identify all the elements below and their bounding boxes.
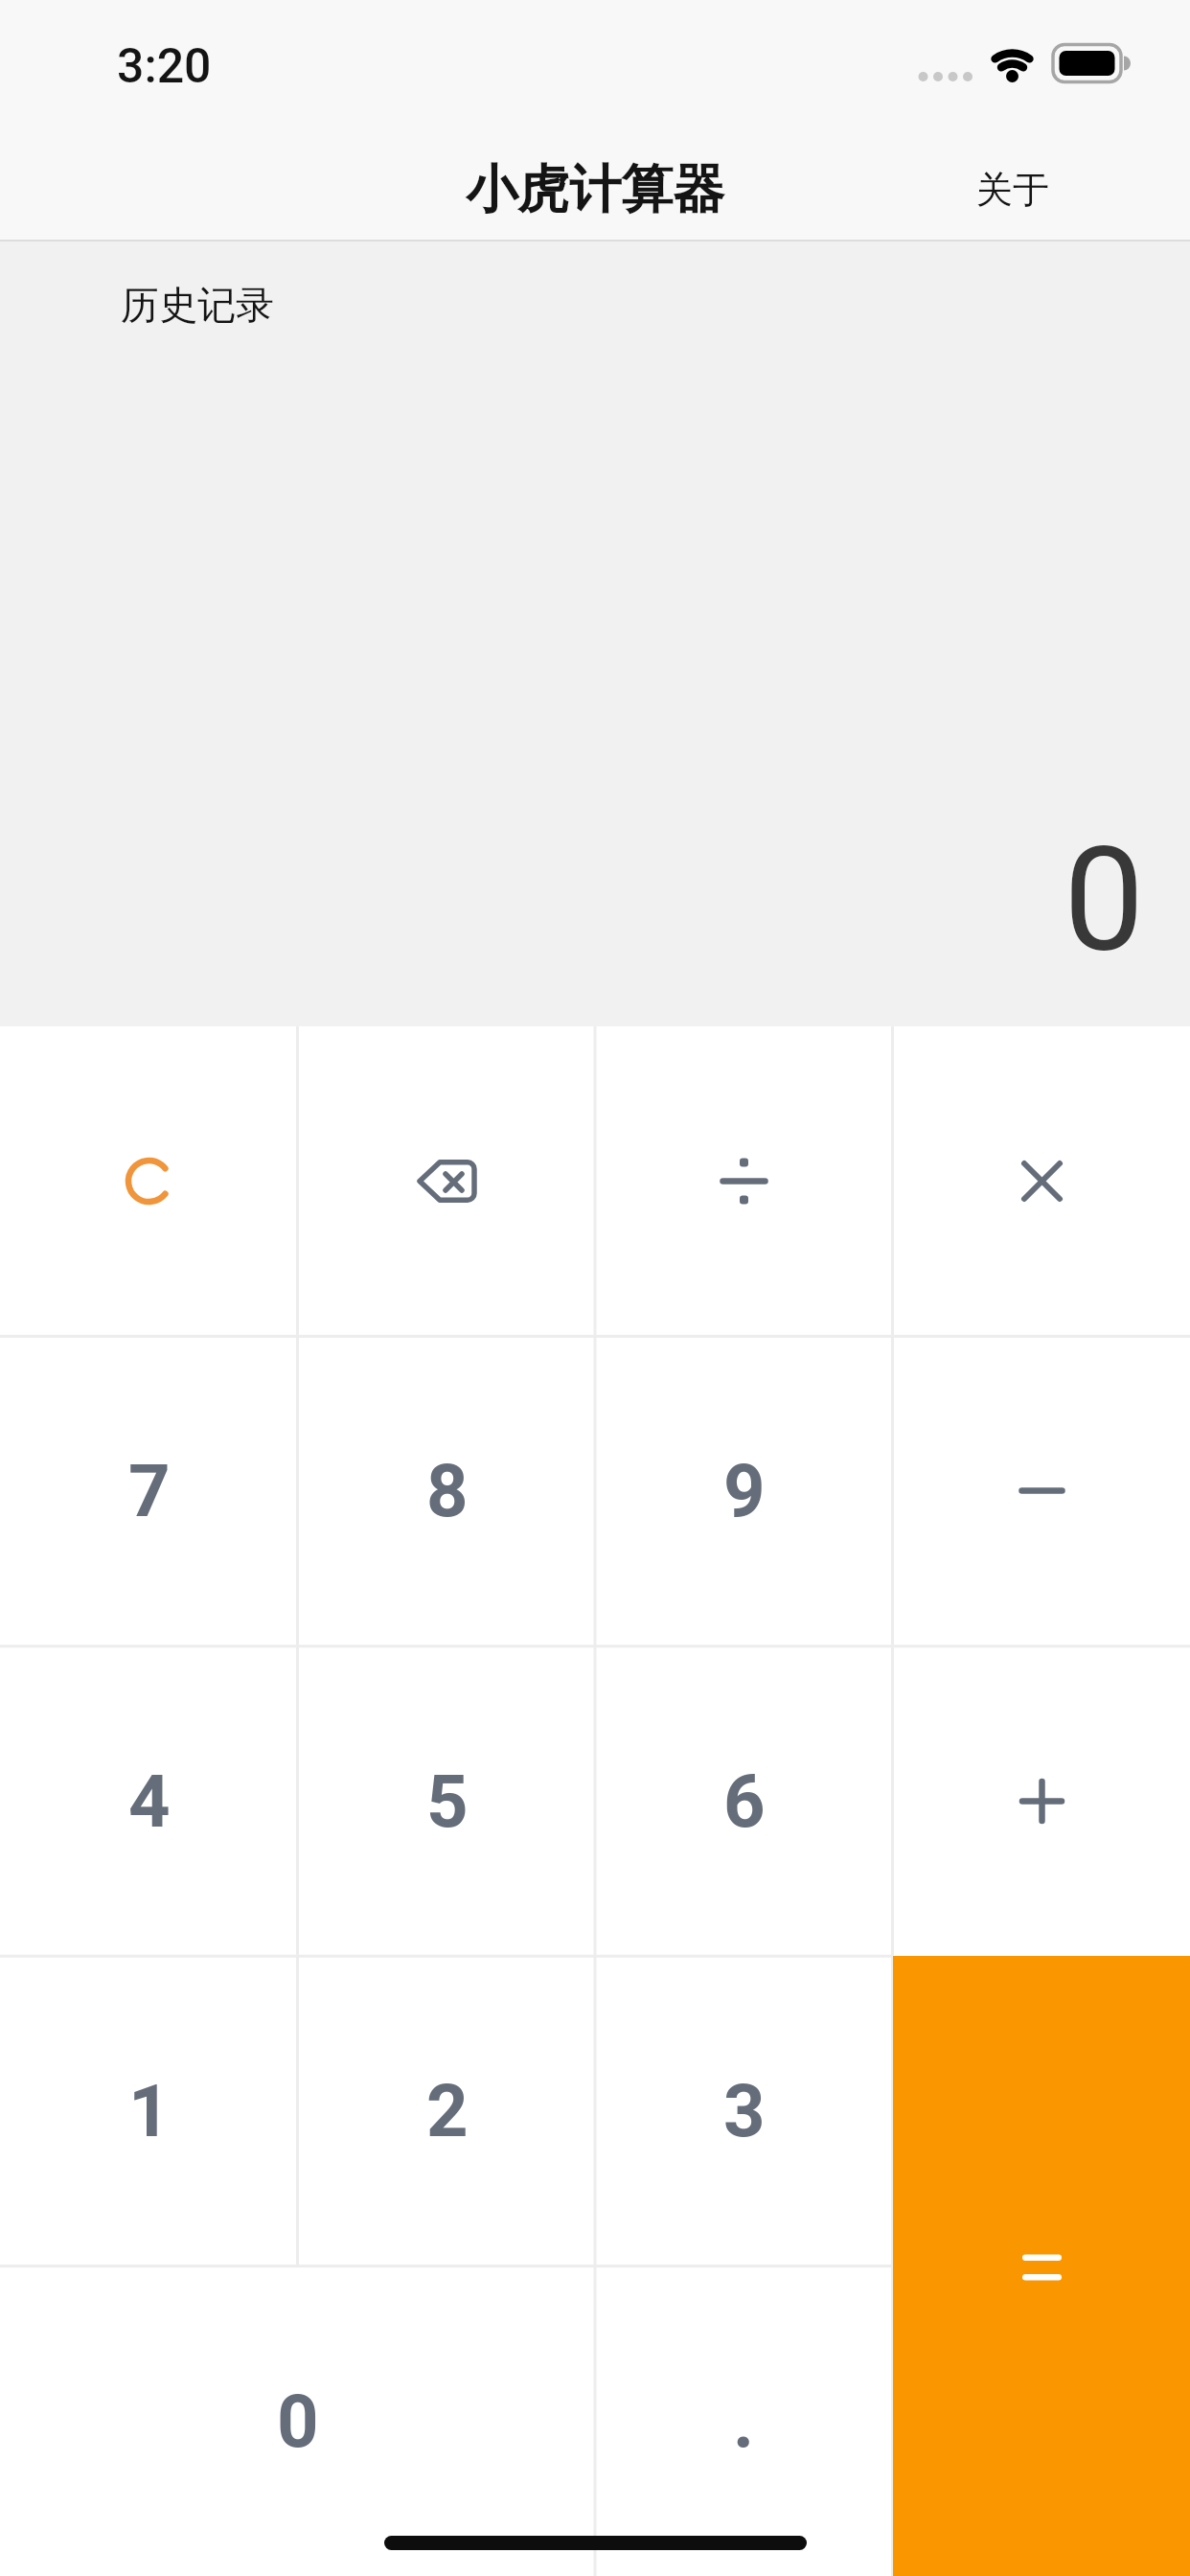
staticText: 4: [128, 1759, 171, 1844]
staticText: 1: [128, 2068, 171, 2153]
staticText: 关于: [976, 167, 1049, 213]
button[interactable]: [893, 1026, 1190, 1336]
button[interactable]: 1: [0, 1956, 298, 2265]
button[interactable]: 0: [0, 2266, 595, 2576]
button[interactable]: 历史记录: [54, 247, 341, 362]
button[interactable]: .: [595, 2266, 893, 2576]
staticText: 3:20: [117, 38, 212, 95]
staticText: 9: [723, 1448, 766, 1533]
button[interactable]: 7: [0, 1336, 298, 1645]
staticText: 0: [1064, 816, 1145, 985]
button[interactable]: [893, 1336, 1190, 1645]
staticText: 7: [128, 1448, 171, 1533]
staticText: 小虎计算器: [466, 157, 724, 222]
button[interactable]: 2: [298, 1956, 596, 2265]
button[interactable]: [595, 1026, 893, 1336]
button[interactable]: [0, 1026, 298, 1336]
button[interactable]: 3: [595, 1956, 893, 2265]
button[interactable]: 8: [298, 1336, 596, 1645]
button[interactable]: 5: [298, 1646, 596, 1956]
staticText: 6: [723, 1759, 766, 1844]
button[interactable]: 6: [595, 1646, 893, 1956]
staticText: 2: [426, 2068, 469, 2153]
button[interactable]: [893, 1956, 1190, 2576]
button[interactable]: [298, 1026, 596, 1336]
staticText: 历史记录: [121, 281, 274, 329]
button[interactable]: 关于: [907, 94, 1118, 286]
staticText: 8: [426, 1448, 469, 1533]
staticText: 0: [277, 2379, 319, 2464]
button[interactable]: [893, 1646, 1190, 1956]
staticText: 5: [426, 1759, 469, 1844]
staticText: 3: [723, 2068, 766, 2153]
button[interactable]: 9: [595, 1336, 893, 1645]
button[interactable]: 4: [0, 1646, 298, 1956]
staticText: .: [733, 2379, 755, 2464]
